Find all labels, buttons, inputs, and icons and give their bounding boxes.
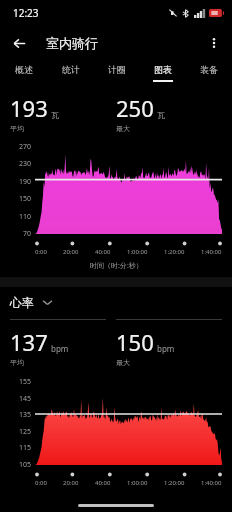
staticText: 1:00:00 [127,479,148,487]
button[interactable]: 概述 [0,59,47,87]
staticText: 室内骑行 [46,35,98,51]
staticText: 统计 [62,64,80,75]
staticText: 瓦 [157,110,165,120]
staticText: 最大 [116,358,130,367]
staticText: 概述 [15,64,33,75]
staticText: 1:20:00 [164,248,185,256]
staticText: 0:00 [35,248,47,256]
staticText: bpm [51,343,69,354]
staticText: 230 [19,159,32,169]
staticText: 最大 [116,124,130,133]
staticText: 0:00 [35,479,47,487]
staticText: 150 [116,327,154,357]
staticText: 193 [10,93,48,123]
button[interactable]: 计圈 [94,59,140,87]
staticText: 1:00:00 [127,248,148,256]
staticText: 190 [19,177,32,187]
staticText: 平均 [10,358,24,367]
button[interactable]: More options [199,28,229,58]
staticText: 125 [19,427,32,437]
staticText: 1:20:00 [164,479,185,487]
button[interactable]: 装备 [186,59,232,87]
staticText: 平均 [10,124,24,133]
staticText: 105 [19,460,32,470]
staticText: 70 [23,229,32,239]
staticText: 瓦 [51,110,59,120]
staticText: 150 [19,194,32,204]
staticText: 110 [19,212,32,222]
button[interactable]: 心率 [10,295,232,310]
staticText: 145 [19,394,32,404]
staticText: 40:00 [95,479,111,487]
staticText: 155 [19,377,32,387]
staticText: 计圈 [108,64,126,75]
staticText: 20:00 [63,479,79,487]
staticText: 心率 [10,295,34,310]
staticText: 20:00 [63,248,79,256]
staticText: bpm [157,343,175,354]
staticText: 40:00 [95,248,111,256]
staticText: 270 [19,142,32,152]
staticText: 1:40:00 [201,479,222,487]
button[interactable]: 统计 [47,59,94,87]
staticText: 137 [10,327,48,357]
staticText: 1:40:00 [201,248,222,256]
staticText: 135 [19,410,32,420]
staticText: 12:23 [13,6,39,20]
button[interactable]: Back [4,28,34,58]
staticText: 装备 [200,64,218,75]
staticText: 250 [116,93,154,123]
staticText: 时间（时:分:秒） [90,261,143,271]
staticText: 115 [19,443,32,453]
staticText: 图表 [154,64,172,75]
button[interactable]: 图表 [140,59,186,87]
